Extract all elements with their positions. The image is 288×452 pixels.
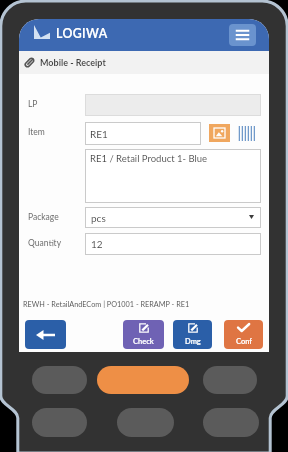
staticText: Item [28, 127, 45, 137]
staticText: Quantity [28, 238, 62, 248]
button[interactable]: pcs [85, 207, 261, 228]
staticText: RE1 [90, 128, 108, 140]
staticText: Conf [236, 337, 252, 346]
button[interactable]: Key left top [32, 366, 87, 394]
staticText: RE1 / Retail Product 1- Blue [90, 153, 208, 164]
button[interactable]: Menu [229, 24, 256, 46]
button[interactable]: Scan [97, 366, 189, 394]
button[interactable]: Dmg [173, 320, 212, 349]
button[interactable]: Scan barcode [237, 124, 256, 142]
button[interactable]: Conf [224, 320, 263, 349]
button[interactable]: Back [25, 320, 66, 349]
staticText: Mobile - Receipt [40, 57, 106, 68]
button[interactable]: Key middle bottom [117, 408, 174, 437]
staticText: pcs [91, 212, 106, 224]
button[interactable]: Key left bottom [32, 408, 87, 437]
staticText: Package [28, 212, 59, 222]
staticText: Check [133, 337, 154, 346]
staticText: REWH - RetailAndECom | PO1001 - RERAMP -… [23, 300, 190, 309]
button[interactable]: Key right bottom [203, 408, 259, 437]
button[interactable]: Take photo [209, 124, 230, 142]
staticText: LP [28, 99, 38, 109]
staticText: Dmg [185, 337, 201, 346]
staticText: LOGIWA [56, 26, 108, 41]
staticText: 12 [91, 238, 103, 250]
button[interactable]: Check [123, 320, 164, 349]
button[interactable]: Key right top [203, 366, 257, 394]
